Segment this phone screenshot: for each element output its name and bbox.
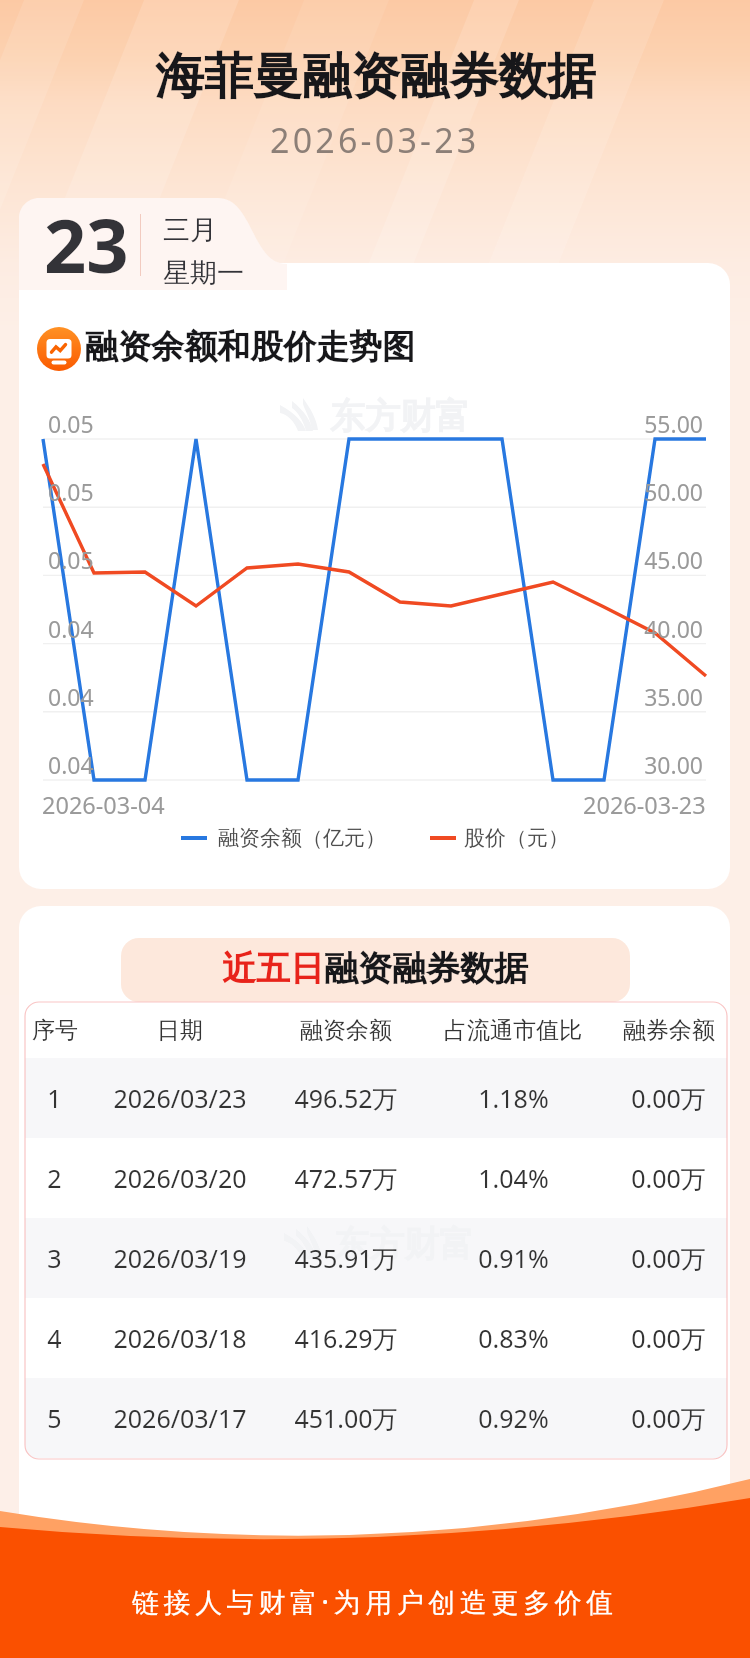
staticText: 0.04 xyxy=(48,681,94,712)
staticText: 0.05 xyxy=(48,544,94,575)
staticText: 451.00万 xyxy=(294,1401,398,1435)
staticText: 496.52万 xyxy=(294,1081,398,1115)
staticText: 435.91万 xyxy=(294,1241,398,1275)
staticText: 1 xyxy=(47,1081,62,1115)
staticText: 2026/03/18 xyxy=(113,1321,247,1355)
staticText: 序号 xyxy=(32,1016,78,1045)
staticText: 2026-03-04 xyxy=(42,789,165,821)
staticText: 2 xyxy=(47,1161,62,1195)
staticText: 星期一 xyxy=(163,256,244,290)
staticText: 2026/03/17 xyxy=(113,1401,247,1435)
staticText: 股价（元） xyxy=(464,825,569,851)
staticText: 日期 xyxy=(157,1016,203,1045)
staticText: 0.83% xyxy=(478,1321,549,1355)
staticText: 416.29万 xyxy=(294,1321,398,1355)
staticText: 0.00万 xyxy=(631,1241,706,1275)
staticText: 1.04% xyxy=(478,1161,549,1195)
staticText: 融资余额和股价走势图 xyxy=(85,326,415,368)
button[interactable]: 序号 xyxy=(25,1002,727,1058)
staticText: 0.00万 xyxy=(631,1321,706,1355)
staticText: 0.00万 xyxy=(631,1081,706,1115)
button[interactable]: 3 xyxy=(25,1218,727,1298)
staticText: 3 xyxy=(47,1241,62,1275)
staticText: 0.05 xyxy=(48,408,94,439)
button[interactable]: 5 xyxy=(25,1378,727,1458)
staticText: 东方财富 xyxy=(334,1222,474,1266)
staticText: 2026-03-23 xyxy=(270,117,480,163)
staticText: 0.91% xyxy=(478,1241,549,1275)
button[interactable]: 2 xyxy=(25,1138,727,1218)
staticText: 4 xyxy=(47,1321,62,1355)
staticText: 55.00 xyxy=(619,408,703,439)
staticText: 近五日 xyxy=(222,947,324,990)
staticText: 35.00 xyxy=(619,681,703,712)
staticText: 海菲曼融资融券数据 xyxy=(155,46,596,108)
staticText: 融资余额（亿元） xyxy=(218,825,386,851)
staticText: 2026/03/20 xyxy=(113,1161,247,1195)
staticText: 30.00 xyxy=(619,749,703,780)
button[interactable]: 走势图 xyxy=(37,327,81,371)
staticText: 东方财富 xyxy=(330,394,470,438)
staticText: 0.92% xyxy=(478,1401,549,1435)
staticText: 链接人与财富·为用户创造更多价值 xyxy=(132,1583,618,1620)
staticText: 45.00 xyxy=(619,544,703,575)
staticText: 40.00 xyxy=(619,613,703,644)
staticText: 2026-03-23 xyxy=(583,789,706,821)
staticText: 472.57万 xyxy=(294,1161,398,1195)
button[interactable]: 1 xyxy=(25,1058,727,1138)
staticText: 融券余额 xyxy=(623,1016,715,1045)
staticText: 0.05 xyxy=(48,476,94,507)
staticText: 三月 xyxy=(163,213,217,247)
staticText: 5 xyxy=(47,1401,62,1435)
button[interactable]: 走势图 xyxy=(19,263,730,889)
staticText: 融资余额 xyxy=(300,1016,392,1045)
staticText: 占流通市值比 xyxy=(444,1016,582,1045)
staticText: 2026/03/19 xyxy=(113,1241,247,1275)
staticText: 0.04 xyxy=(48,613,94,644)
button[interactable]: 4 xyxy=(25,1298,727,1378)
staticText: 0.00万 xyxy=(631,1161,706,1195)
staticText: 50.00 xyxy=(619,476,703,507)
staticText: 融资融券数据 xyxy=(324,947,528,990)
staticText: 2026/03/23 xyxy=(113,1081,247,1115)
staticText: 0.04 xyxy=(48,749,94,780)
staticText: 23 xyxy=(44,194,129,295)
staticText: 1.18% xyxy=(478,1081,549,1115)
staticText: 0.00万 xyxy=(631,1401,706,1435)
